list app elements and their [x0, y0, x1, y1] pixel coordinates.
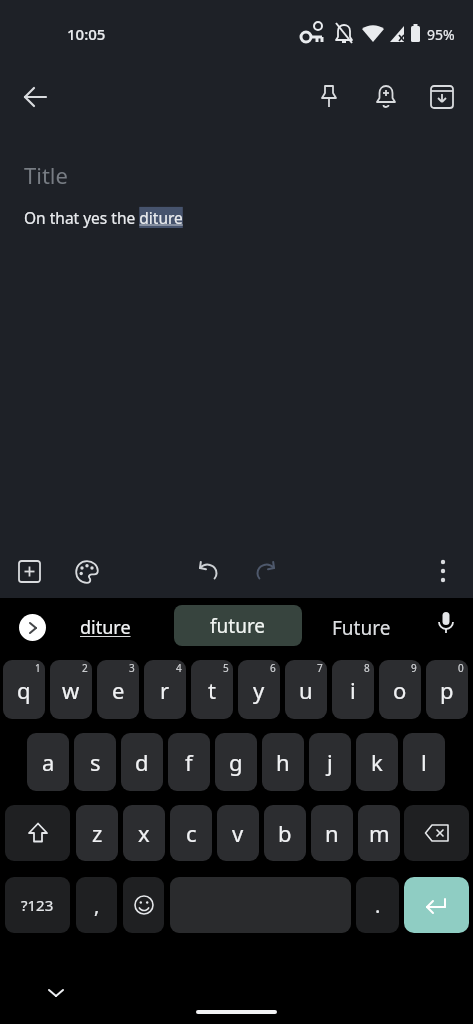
button[interactable]: g [215, 733, 257, 791]
staticText: 10:05 [67, 24, 106, 44]
button[interactable]: j [309, 733, 351, 791]
staticText: ?123 [21, 895, 54, 915]
button[interactable] [374, 84, 398, 110]
staticText: w [62, 675, 80, 705]
button[interactable]: k [356, 733, 398, 791]
button[interactable] [436, 611, 456, 643]
staticText: y [253, 675, 265, 705]
staticText: Future [332, 615, 391, 641]
staticText: e [112, 675, 125, 705]
button[interactable]: r [144, 660, 186, 719]
button[interactable]: s [74, 733, 116, 791]
staticText: 95% [427, 25, 455, 44]
button[interactable]: Future [316, 605, 406, 650]
button[interactable]: b [264, 805, 306, 861]
button[interactable]: v [217, 805, 259, 861]
button[interactable] [255, 561, 278, 581]
button[interactable]: a [27, 733, 69, 791]
button[interactable] [48, 988, 64, 998]
staticText: 9 [411, 661, 417, 675]
staticText: q [17, 675, 31, 705]
button[interactable] [404, 877, 469, 933]
staticText: j [327, 747, 333, 777]
staticText: 2 [82, 661, 88, 675]
staticText: t [208, 675, 216, 705]
staticText: p [440, 675, 454, 705]
button[interactable] [24, 86, 47, 108]
button[interactable]: h [262, 733, 304, 791]
button[interactable]: x [123, 805, 165, 861]
button[interactable] [18, 560, 41, 583]
button[interactable]: diture [60, 605, 150, 650]
staticText: On that yes the diture [24, 207, 183, 228]
button[interactable]: c [170, 805, 212, 861]
button[interactable] [5, 805, 70, 861]
button[interactable] [404, 805, 469, 861]
staticText: o [393, 675, 407, 705]
button[interactable]: d [121, 733, 163, 791]
staticText: n [325, 818, 339, 848]
staticText: r [160, 675, 170, 705]
button[interactable]: z [76, 805, 118, 861]
staticText: i [350, 675, 356, 705]
button[interactable] [19, 614, 46, 641]
button[interactable] [318, 84, 340, 110]
button[interactable]: u [285, 660, 327, 719]
staticText: a [42, 747, 55, 777]
staticText: c [186, 818, 197, 848]
button[interactable]: , [76, 877, 117, 933]
button[interactable]: o [379, 660, 421, 719]
staticText: Title [24, 160, 68, 190]
button[interactable] [75, 560, 99, 584]
button[interactable]: . [356, 877, 399, 933]
staticText: diture [80, 615, 131, 640]
staticText: 3 [129, 661, 135, 675]
button[interactable]: ?123 [5, 877, 70, 933]
staticText: m [369, 818, 390, 848]
staticText: s [90, 747, 101, 777]
staticText: b [278, 818, 292, 848]
staticText: . [375, 892, 381, 919]
staticText: 8 [364, 661, 370, 675]
staticText: future [210, 613, 266, 639]
staticText: k [371, 747, 383, 777]
button[interactable]: t [191, 660, 233, 719]
staticText: 0 [458, 661, 464, 675]
staticText: z [92, 818, 103, 848]
staticText: l [421, 747, 427, 777]
staticText: v [232, 818, 244, 848]
staticText: 4 [176, 661, 182, 675]
button[interactable]: l [403, 733, 445, 791]
button[interactable]: p [426, 660, 468, 719]
staticText: , [94, 892, 100, 919]
staticText: f [185, 747, 193, 777]
button[interactable]: m [358, 805, 400, 861]
staticText: 5 [223, 661, 229, 675]
button[interactable]: y [238, 660, 280, 719]
button[interactable]: n [311, 805, 353, 861]
button[interactable] [123, 877, 164, 933]
button[interactable]: q [3, 660, 45, 719]
staticText: d [135, 747, 149, 777]
button[interactable]: future [174, 605, 302, 646]
button[interactable]: e [97, 660, 139, 719]
button[interactable] [196, 561, 219, 581]
button[interactable] [430, 85, 454, 109]
button[interactable] [438, 558, 448, 586]
staticText: g [229, 747, 243, 777]
button[interactable]: f [168, 733, 210, 791]
staticText: 6 [270, 661, 276, 675]
button[interactable]: w [50, 660, 92, 719]
staticText: h [276, 747, 290, 777]
staticText: 7 [317, 661, 323, 675]
staticText: u [299, 675, 313, 705]
button[interactable] [170, 877, 351, 933]
staticText: 1 [35, 661, 41, 675]
button[interactable]: i [332, 660, 374, 719]
staticText: x [138, 818, 150, 848]
